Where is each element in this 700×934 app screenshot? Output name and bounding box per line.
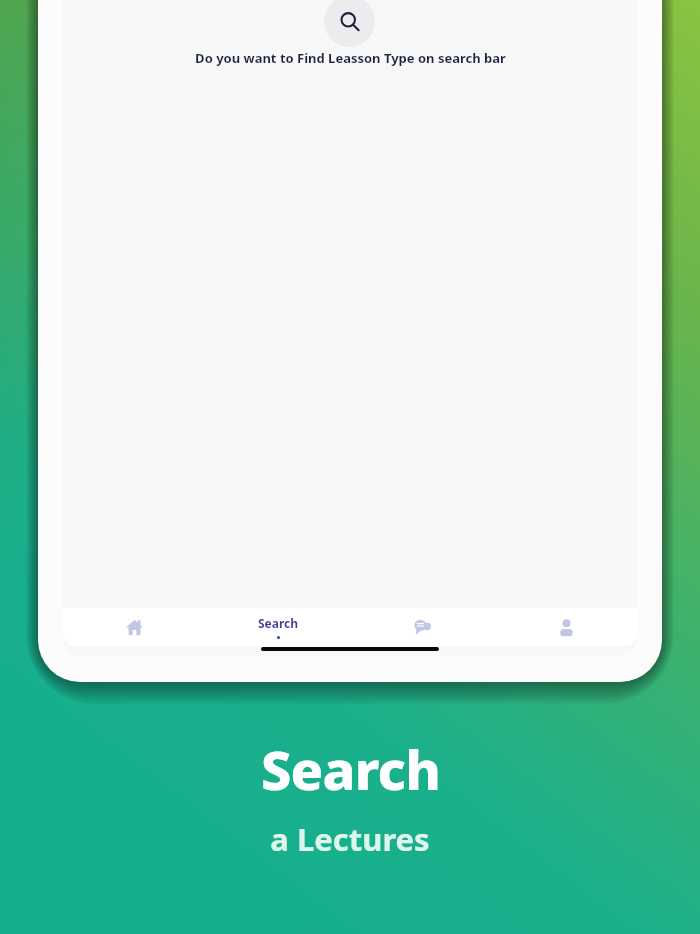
staticText: Search [261,732,440,806]
button[interactable]: Profile [494,608,638,646]
staticText: Do you want to Find Leasson Type on sear… [195,49,506,67]
staticText: a Lectures [270,818,430,860]
button[interactable]: Home [62,608,206,646]
staticText: Search [258,615,299,631]
button[interactable]: Messages [350,608,494,646]
button[interactable]: Search [324,0,375,47]
button[interactable]: Search [206,608,350,646]
